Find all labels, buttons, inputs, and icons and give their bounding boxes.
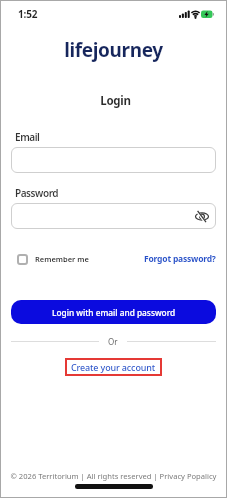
button[interactable]: Login with email and password — [11, 300, 216, 324]
staticText: Login — [2, 93, 227, 109]
staticText: lifejourney — [0, 37, 227, 63]
staticText: Remember me — [35, 254, 89, 264]
button[interactable]: Create your account — [65, 358, 162, 376]
button[interactable]: Forgot password? — [144, 253, 216, 265]
staticText: Password — [15, 186, 59, 200]
staticText: Email — [15, 130, 40, 144]
button[interactable] — [11, 203, 216, 229]
staticText: Login with email and password — [52, 307, 176, 318]
button[interactable] — [17, 254, 28, 265]
staticText: © 2026 Territorium | All rights reserved… — [0, 471, 227, 481]
button[interactable] — [11, 147, 216, 173]
staticText: Create your account — [71, 361, 156, 373]
staticText: Or — [108, 336, 118, 347]
staticText: 1:52 — [18, 7, 38, 21]
